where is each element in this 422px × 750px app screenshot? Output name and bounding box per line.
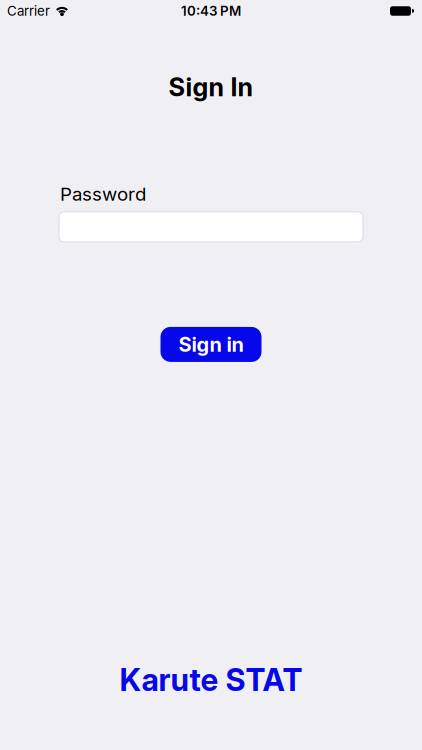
- staticText: Sign In: [168, 72, 253, 102]
- staticText: Sign in: [178, 333, 243, 356]
- staticText: Password: [60, 183, 146, 205]
- staticText: Carrier: [7, 3, 50, 19]
- staticText: Karute STAT: [119, 662, 302, 698]
- button[interactable]: Sign in: [160, 327, 261, 362]
- staticText: 10:43 PM: [181, 3, 241, 19]
- button[interactable]: Password: [59, 212, 363, 242]
